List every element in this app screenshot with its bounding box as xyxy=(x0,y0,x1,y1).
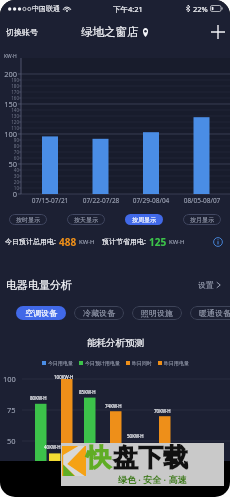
button[interactable]: 按天显示 xyxy=(67,214,105,225)
staticText: 绿地之窗店 xyxy=(81,25,139,39)
staticText: 120 xyxy=(11,119,19,125)
button[interactable]: 绿地之窗店 xyxy=(79,23,151,41)
staticText: 照明设施 xyxy=(141,308,173,318)
staticText: 60 xyxy=(11,155,19,161)
button[interactable]: 按月显示 xyxy=(183,214,221,225)
staticText: 22% xyxy=(193,4,208,14)
staticText: 07/29-08/04 xyxy=(126,196,176,205)
button[interactable]: 冷藏设备 xyxy=(74,306,124,320)
staticText: 按天显示 xyxy=(74,216,98,224)
staticText: 180 xyxy=(11,83,19,89)
staticText: 中国联通 xyxy=(32,4,60,13)
staticText: 90 xyxy=(11,137,19,143)
staticText: 07/15-07/21 xyxy=(25,196,75,205)
staticText: 电器电量分析 xyxy=(6,278,72,292)
staticText: KW·H xyxy=(169,238,185,246)
button[interactable]: 照明设施 xyxy=(132,306,182,320)
staticText: 160 xyxy=(11,95,19,101)
staticText: 130 xyxy=(11,113,19,119)
staticText: 40 xyxy=(11,167,19,173)
staticText: 昨日用电量 xyxy=(164,360,189,366)
staticText: 盘下载 xyxy=(113,442,188,473)
staticText: 30 xyxy=(11,173,19,179)
staticText: 85KW·H xyxy=(79,389,96,395)
staticText: 10 xyxy=(11,185,19,191)
staticText: 50KW·H xyxy=(127,433,144,439)
staticText: 昨日同时 xyxy=(132,360,152,366)
staticText: KW·H xyxy=(4,53,17,60)
staticText: 80 xyxy=(11,143,19,149)
staticText: 快 xyxy=(86,442,111,473)
staticText: 125 xyxy=(149,235,167,249)
staticText: 能耗分析预测 xyxy=(87,337,144,349)
staticText: 488 xyxy=(59,235,77,249)
staticText: 预计节省用电: xyxy=(102,237,146,247)
staticText: 100 xyxy=(2,129,17,139)
staticText: 按月显示 xyxy=(190,216,214,224)
staticText: 下午4:21 xyxy=(113,4,143,14)
button[interactable]: 设置 xyxy=(195,277,224,293)
staticText: 200 xyxy=(2,69,17,79)
staticText: 设置 xyxy=(198,280,214,290)
button[interactable]: 按周显示 xyxy=(125,214,163,225)
staticText: 50 xyxy=(7,436,16,446)
staticText: 按周显示 xyxy=(132,216,156,224)
staticText: 20 xyxy=(11,179,19,185)
staticText: 150 xyxy=(2,99,17,109)
staticText: 今日预计总用电: xyxy=(5,237,56,247)
staticText: 75 xyxy=(7,405,16,415)
staticText: 70KW·H xyxy=(154,408,171,414)
staticText: 08/05-08/07 xyxy=(177,196,227,205)
staticText: 按时显示 xyxy=(16,216,40,224)
staticText: 40KW·H xyxy=(44,444,61,450)
button[interactable]: 按时显示 xyxy=(9,214,47,225)
staticText: 绿色 · 安全 · 高速 xyxy=(118,473,187,485)
button[interactable]: 暖通设备 xyxy=(190,306,230,320)
staticText: 110 xyxy=(11,125,19,131)
staticText: 今日用电量 xyxy=(48,360,73,366)
button[interactable]: 切换账号 xyxy=(0,23,44,41)
staticText: 190 xyxy=(11,77,19,83)
staticText: 170 xyxy=(11,89,19,95)
staticText: 0 xyxy=(2,189,17,199)
staticText: 暖通设备 xyxy=(199,308,230,318)
staticText: 07/22-07/28 xyxy=(76,196,126,205)
staticText: 50 xyxy=(2,159,17,169)
staticText: 冷藏设备 xyxy=(83,308,115,318)
staticText: 100KW·H xyxy=(54,374,74,380)
staticText: 今日预计用电量 xyxy=(85,360,120,366)
staticText: 切换账号 xyxy=(6,27,38,37)
button[interactable]: Info xyxy=(211,235,225,249)
staticText: 80KW·H xyxy=(30,395,47,401)
staticText: KW·H xyxy=(79,238,95,246)
staticText: 140 xyxy=(11,107,19,113)
button[interactable]: Add xyxy=(206,20,230,44)
staticText: 空调设备 xyxy=(25,308,57,318)
staticText: 100 xyxy=(3,374,16,384)
staticText: 70 xyxy=(11,149,19,155)
button[interactable]: 空调设备 xyxy=(16,306,66,320)
staticText: 74KW·H xyxy=(105,403,122,409)
